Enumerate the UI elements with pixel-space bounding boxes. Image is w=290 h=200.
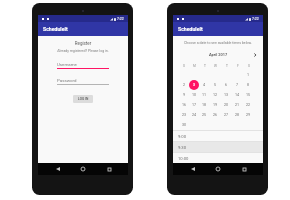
button[interactable]: 21	[232, 100, 243, 110]
staticText: 24	[192, 113, 197, 117]
staticText: 8	[247, 83, 250, 87]
button[interactable]: 11	[199, 90, 210, 100]
button[interactable]: 29	[243, 110, 254, 120]
staticText: 6	[225, 83, 228, 87]
staticText: 19	[213, 103, 218, 107]
button[interactable]: 18	[199, 100, 210, 110]
button[interactable]: 9	[179, 90, 189, 100]
staticText: 21	[235, 103, 240, 107]
staticText: 10	[192, 93, 197, 97]
staticText: 13	[224, 93, 229, 97]
staticText: 7:22	[117, 17, 124, 21]
staticText: 3	[193, 83, 196, 87]
staticText: 9	[183, 93, 186, 97]
staticText: S	[183, 64, 185, 68]
staticText: 9:30	[178, 145, 187, 150]
staticText: F	[237, 64, 239, 68]
button[interactable]: 8	[243, 80, 254, 90]
button[interactable]: 9:00	[173, 131, 263, 141]
staticText: S	[248, 64, 250, 68]
button[interactable]: 7	[232, 80, 243, 90]
staticText: 7:22	[252, 17, 259, 21]
staticText: 10:00	[178, 156, 189, 161]
staticText: ScheduleIt	[43, 26, 68, 32]
staticText: ScheduleIt	[178, 26, 203, 32]
staticText: April 2017	[209, 52, 228, 57]
button[interactable]: Back	[187, 163, 199, 175]
button[interactable]: 4	[199, 80, 210, 90]
staticText: Username	[57, 62, 77, 67]
staticText: 17	[192, 103, 197, 107]
button[interactable]: Recent apps	[103, 163, 115, 175]
staticText: 30	[182, 123, 187, 127]
staticText: Already registered? Please log in.	[38, 49, 128, 53]
staticText: 29	[246, 113, 251, 117]
staticText: 28	[235, 113, 240, 117]
staticText: Register	[38, 41, 128, 46]
button[interactable]: 15	[243, 90, 254, 100]
staticText: 1	[247, 73, 250, 77]
button[interactable]: 28	[232, 110, 243, 120]
staticText: T	[204, 64, 206, 68]
staticText: Choose a date to see available times bel…	[173, 41, 263, 45]
button[interactable]: 14	[232, 90, 243, 100]
button[interactable]: 24	[189, 110, 199, 120]
staticText: 26	[213, 113, 218, 117]
staticText: 2	[183, 83, 186, 87]
staticText: 5	[214, 83, 217, 87]
staticText: T	[226, 64, 228, 68]
staticText: 16	[182, 103, 187, 107]
staticText: 18	[202, 103, 207, 107]
staticText: Password	[57, 78, 77, 83]
button[interactable]: 13	[221, 90, 232, 100]
button[interactable]: LOG IN	[73, 95, 93, 103]
button[interactable]: 1	[243, 70, 254, 80]
button[interactable]: 3	[189, 80, 199, 90]
button[interactable]: 26	[210, 110, 221, 120]
button[interactable]: 16	[179, 100, 189, 110]
button[interactable]: 9:30	[173, 142, 263, 152]
staticText: 27	[224, 113, 229, 117]
button[interactable]: 23	[179, 110, 189, 120]
staticText: 23	[182, 113, 187, 117]
staticText: 15	[246, 93, 251, 97]
button[interactable]: Recent apps	[238, 163, 250, 175]
button[interactable]: Back	[52, 163, 64, 175]
button[interactable]: 17	[189, 100, 199, 110]
button[interactable]: 2	[179, 80, 189, 90]
staticText: 14	[235, 93, 240, 97]
staticText: 7	[236, 83, 239, 87]
button[interactable]: 22	[243, 100, 254, 110]
button[interactable]: 25	[199, 110, 210, 120]
button[interactable]: 12	[210, 90, 221, 100]
staticText: 22	[246, 103, 251, 107]
button[interactable]: 27	[221, 110, 232, 120]
button[interactable]: Home	[212, 163, 224, 175]
staticText: 11	[202, 93, 207, 97]
staticText: 20	[224, 103, 229, 107]
button[interactable]: 10:00	[173, 153, 263, 163]
staticText: 4	[203, 83, 206, 87]
staticText: 9:00	[178, 134, 187, 139]
button[interactable]: 30	[179, 120, 189, 130]
staticText: M	[193, 64, 196, 68]
staticText: W	[214, 64, 217, 68]
staticText: 12	[213, 93, 218, 97]
button[interactable]: 6	[221, 80, 232, 90]
button[interactable]: 20	[221, 100, 232, 110]
button[interactable]: 19	[210, 100, 221, 110]
button[interactable]: Next month	[251, 51, 258, 58]
button[interactable]: Home	[77, 163, 89, 175]
button[interactable]: 10	[189, 90, 199, 100]
staticText: LOG IN	[78, 97, 89, 101]
staticText: 25	[202, 113, 207, 117]
button[interactable]: 5	[210, 80, 221, 90]
